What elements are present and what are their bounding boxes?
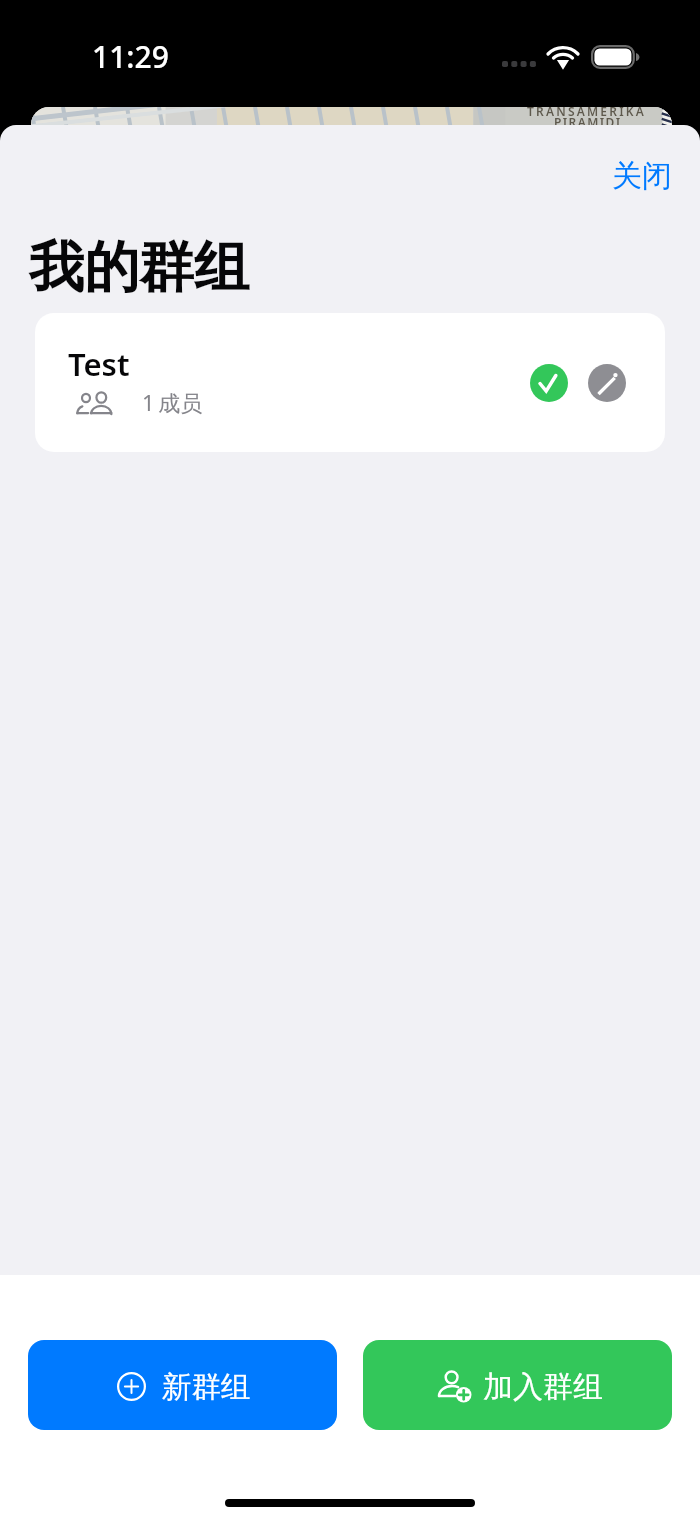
staticText: PIRAMIDI (554, 114, 622, 130)
staticText: TRANSAMERIKA (527, 107, 647, 119)
staticText: 11:29 (92, 36, 169, 77)
button[interactable]: 加入群组 (363, 1340, 672, 1430)
staticText: Test (68, 343, 130, 385)
staticText: 我的群组 (29, 233, 249, 302)
button[interactable]: 新群组 (28, 1340, 337, 1430)
staticText: 关闭 (612, 157, 672, 195)
staticText: 1 成员 (142, 387, 203, 417)
button[interactable]: 关闭 (596, 145, 688, 207)
staticText: 新群组 (162, 1369, 251, 1406)
staticText: 加入群组 (483, 1368, 603, 1406)
button[interactable]: Selected group (530, 364, 568, 402)
button[interactable]: Test (35, 313, 665, 452)
button[interactable]: Edit group (588, 364, 626, 402)
